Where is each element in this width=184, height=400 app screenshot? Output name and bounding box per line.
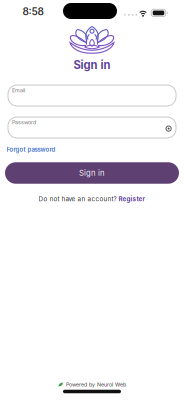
staticText: Do not have an account? — [38, 195, 116, 203]
staticText: Password — [12, 119, 36, 125]
staticText: Sign in — [79, 168, 105, 178]
button[interactable]: Sign in — [5, 162, 179, 184]
staticText: Register — [118, 195, 145, 203]
button[interactable]: Email — [8, 85, 176, 106]
staticText: Powered by Neurol Web — [66, 381, 126, 388]
button[interactable]: Register — [118, 195, 145, 203]
button[interactable]: Show password — [165, 125, 173, 133]
button[interactable]: Password — [8, 117, 176, 138]
staticText: 8:58 — [22, 5, 43, 18]
staticText: Email — [12, 87, 25, 93]
button[interactable]: Forgot password — [6, 146, 55, 153]
staticText: Sign in — [73, 58, 110, 72]
staticText: Forgot password — [6, 146, 55, 153]
